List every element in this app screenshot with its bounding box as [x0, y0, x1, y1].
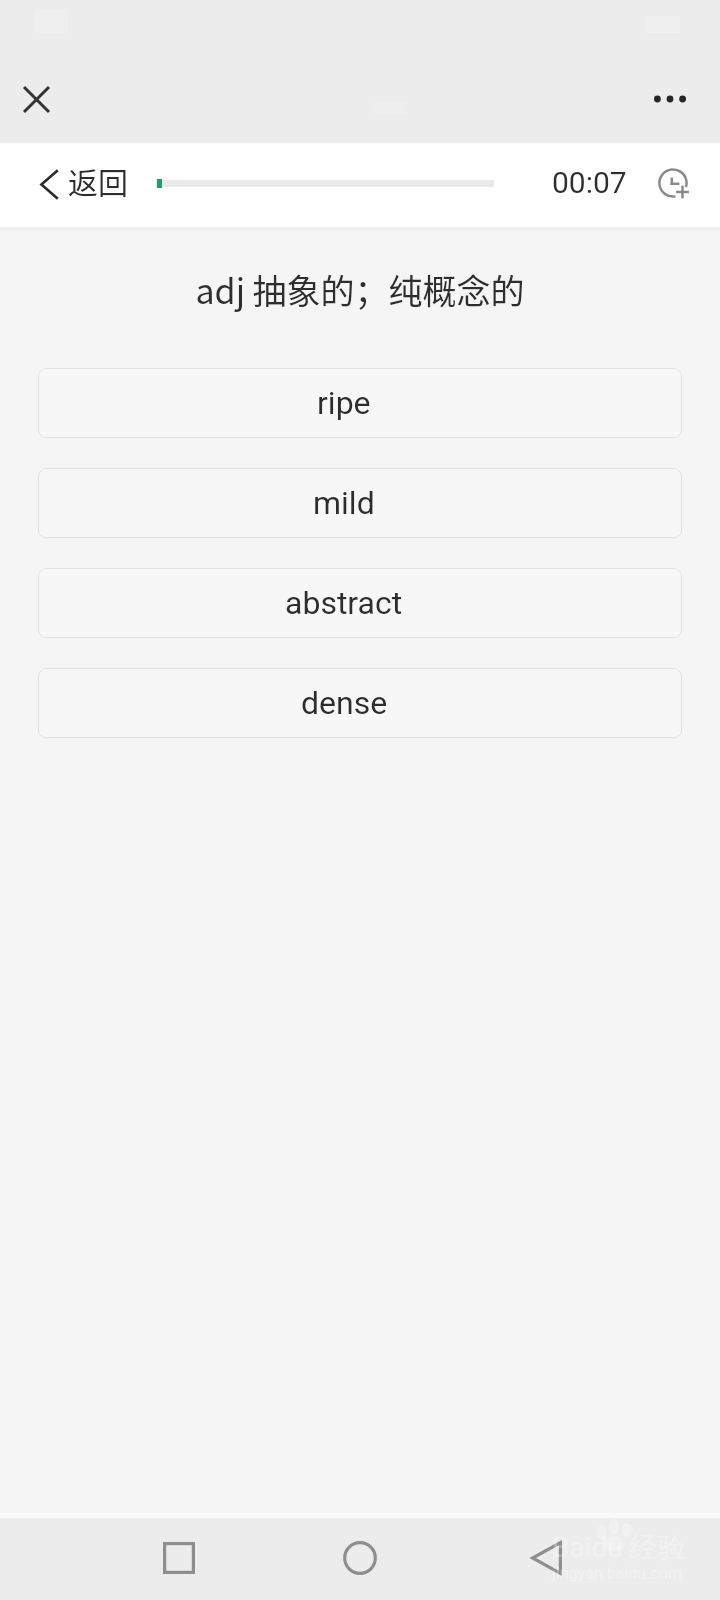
- button[interactable]: Recent apps: [143, 1522, 215, 1594]
- button[interactable]: More options: [643, 74, 697, 124]
- button[interactable]: dense: [38, 668, 682, 738]
- button[interactable]: 返回: [40, 164, 128, 207]
- staticText: jingyan.baidu.com: [552, 1564, 682, 1583]
- staticText: abstract: [285, 584, 403, 622]
- button[interactable]: Close: [11, 74, 61, 124]
- button[interactable]: Back: [510, 1522, 582, 1594]
- staticText: ripe: [317, 384, 371, 422]
- button[interactable]: Add time: [648, 158, 698, 208]
- button[interactable]: mild: [38, 468, 682, 538]
- button[interactable]: abstract: [38, 568, 682, 638]
- button[interactable]: Home: [324, 1522, 396, 1594]
- button[interactable]: ripe: [38, 368, 682, 438]
- staticText: dense: [301, 684, 388, 722]
- staticText: mild: [313, 484, 375, 522]
- staticText: 00:07: [552, 165, 627, 200]
- staticText: Baidu 经验: [552, 1530, 686, 1565]
- staticText: adj 抽象的；纯概念的: [0, 265, 720, 314]
- staticText: 返回: [68, 159, 128, 202]
